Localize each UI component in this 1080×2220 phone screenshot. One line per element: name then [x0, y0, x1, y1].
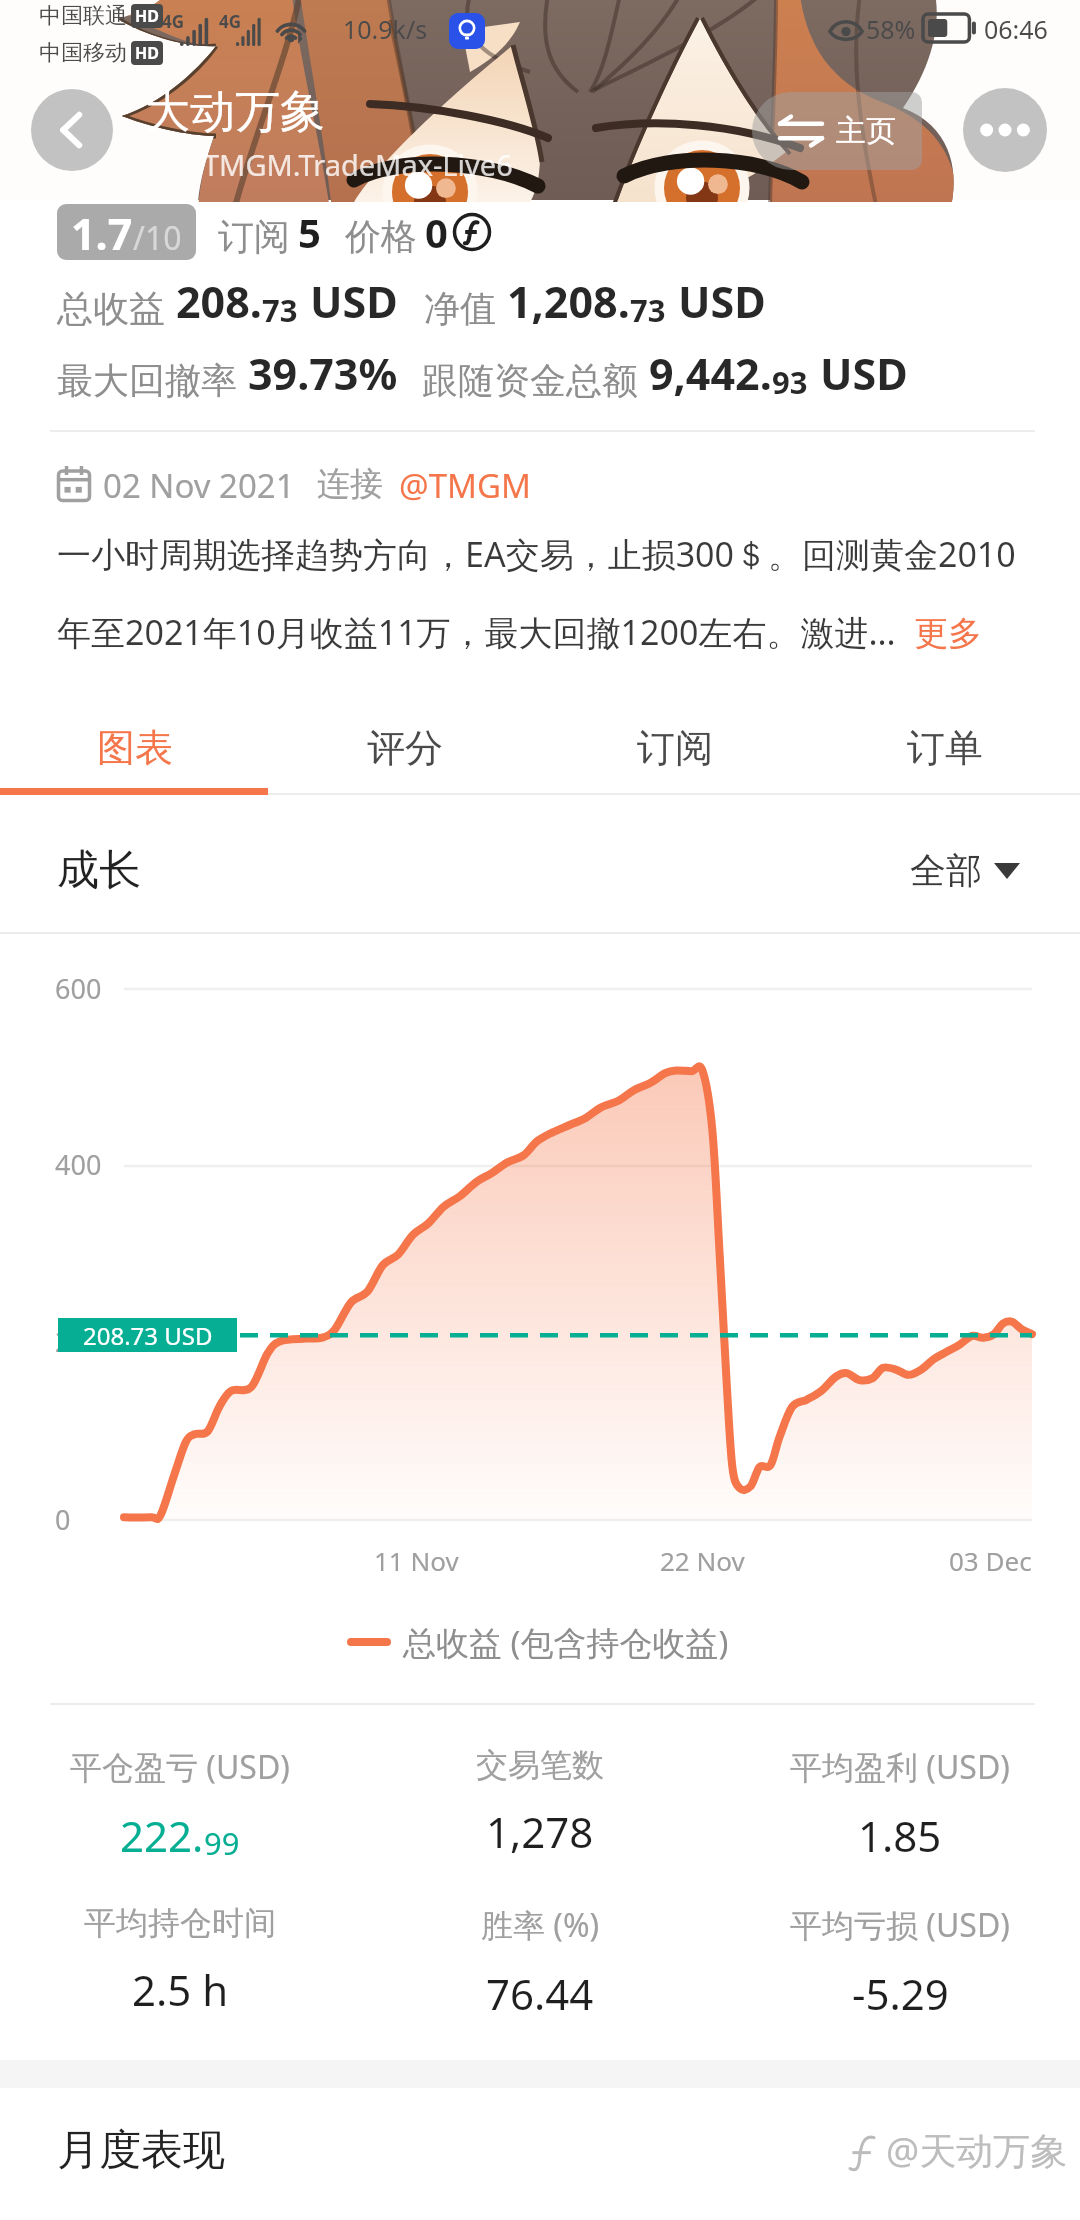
staticText: 平均盈利 (USD) — [790, 1745, 1010, 1789]
staticText: 222. — [120, 1807, 204, 1864]
staticText: 1.7 — [71, 204, 133, 260]
staticText: 中国联通 — [39, 2, 127, 30]
staticText: 5 — [298, 205, 321, 259]
staticText: 价格 — [345, 214, 417, 259]
staticText: 主页 — [836, 112, 896, 150]
staticText: 订阅 — [218, 214, 290, 259]
staticText: HD — [135, 5, 159, 27]
staticText: 跟随资金总额 — [422, 358, 638, 403]
staticText: 胜率 (%) — [481, 1903, 600, 1947]
staticText: 1,278 — [486, 1803, 594, 1860]
staticText: 22 Nov — [660, 1543, 745, 1578]
staticText: 4G — [219, 10, 242, 33]
staticText: 99 — [204, 1822, 240, 1864]
staticText: 订单 — [907, 724, 983, 772]
staticText: 10.9k/s — [343, 12, 428, 46]
staticText: 图表 — [97, 724, 173, 772]
button[interactable]: 全部 — [900, 838, 1030, 903]
staticText: 02 Nov 2021 — [103, 463, 295, 505]
staticText: 交易笔数 — [476, 1745, 604, 1785]
staticText: 76.44 — [486, 1965, 594, 2022]
staticText: HD — [135, 42, 159, 64]
staticText: USD — [310, 272, 398, 331]
staticText: 11 Nov — [374, 1543, 459, 1578]
staticText: 400 — [55, 1146, 102, 1183]
staticText: 93 — [772, 361, 808, 403]
staticText: 平均持仓时间 — [84, 1903, 276, 1943]
staticText: 成长 — [57, 844, 141, 897]
staticText: 中国移动 — [39, 39, 127, 67]
staticText: 一小时周期选择趋势方向，EA交易，止损300＄。回测黄金2010 — [57, 531, 1016, 577]
staticText: 200 — [55, 1323, 102, 1360]
button[interactable]: Back — [31, 89, 113, 171]
staticText: 最大回撤率 — [57, 358, 237, 403]
staticText: 0 — [425, 205, 448, 259]
staticText: 4G — [162, 10, 185, 33]
staticText: 总收益 (包含持仓收益) — [403, 1620, 729, 1665]
staticText: 1.85 — [858, 1807, 942, 1864]
staticText: 平均亏损 (USD) — [790, 1903, 1010, 1947]
staticText: USD — [820, 344, 908, 403]
staticText: 73 — [262, 289, 298, 331]
staticText: 1,208. — [507, 272, 630, 331]
button[interactable]: 订阅 — [540, 700, 810, 795]
staticText: -5.29 — [852, 1965, 949, 2022]
staticText: 订阅 — [637, 724, 713, 772]
staticText: 58% — [866, 12, 916, 46]
staticText: 208.73 USD — [83, 1319, 213, 1352]
staticText: 9,442. — [649, 344, 772, 403]
staticText: 06:46 — [984, 12, 1048, 46]
staticText: 大动万象 — [145, 84, 325, 141]
staticText: 连接 — [317, 463, 383, 505]
staticText: 03 Dec — [949, 1543, 1032, 1578]
staticText: 年至2021年10月收益11万，最大回撤1200左右。激进... — [57, 609, 896, 655]
staticText: @天动万象 — [886, 2124, 1068, 2175]
staticText: 平仓盈亏 (USD) — [70, 1745, 290, 1789]
button[interactable]: 评分 — [270, 700, 540, 795]
staticText: 月度表现 — [57, 2124, 225, 2177]
staticText: @TMGM — [399, 463, 531, 505]
staticText: 208. — [176, 272, 262, 331]
staticText: 39.73% — [248, 344, 398, 403]
staticText: TMGM.TradeMax-Live6 — [203, 145, 513, 184]
staticText: 0 — [55, 1501, 71, 1538]
button[interactable]: 图表 — [0, 700, 270, 795]
button[interactable]: 更多 — [914, 612, 982, 655]
staticText: 总收益 — [57, 286, 165, 331]
staticText: /10 — [133, 216, 182, 260]
staticText: 全部 — [910, 848, 982, 893]
staticText: 评分 — [367, 724, 443, 772]
staticText: USD — [678, 272, 766, 331]
staticText: 73 — [630, 289, 666, 331]
staticText: 净值 — [424, 286, 496, 331]
button[interactable]: 订单 — [810, 700, 1080, 795]
staticText: 600 — [55, 970, 102, 1007]
staticText: 2.5 h — [132, 1961, 229, 2018]
button[interactable]: 主页 — [752, 92, 922, 170]
button[interactable]: More options — [963, 88, 1047, 172]
